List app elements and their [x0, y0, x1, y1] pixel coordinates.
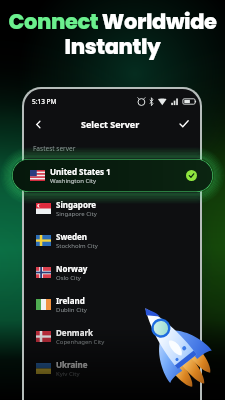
- staticText: Kyiv City: [56, 370, 80, 378]
- button[interactable]: United States 1: [12, 159, 213, 192]
- staticText: United States 1: [50, 166, 111, 177]
- staticText: Oslo City: [56, 274, 81, 282]
- button[interactable]: Confirm selection: [175, 115, 193, 133]
- button[interactable]: Back: [29, 115, 47, 133]
- staticText: Denmark: [56, 327, 93, 338]
- button[interactable]: Denmark: [24, 320, 200, 352]
- staticText: Singapore City: [56, 210, 97, 218]
- staticText: Dublin City: [56, 306, 87, 314]
- staticText: 5:13 PM: [32, 97, 57, 106]
- button[interactable]: Sweden: [24, 224, 200, 256]
- staticText: Copenhagen City: [56, 338, 105, 346]
- staticText: Norway: [56, 263, 88, 274]
- staticText: Sweden: [56, 231, 88, 242]
- button[interactable]: Norway: [24, 256, 200, 288]
- staticText: Ukraine: [56, 359, 88, 370]
- staticText: Fastest server: [33, 144, 76, 153]
- staticText: Select Server: [81, 118, 140, 130]
- button[interactable]: Ukraine: [24, 352, 200, 384]
- staticText: Ireland: [56, 295, 85, 306]
- staticText: Washington City: [50, 177, 96, 185]
- button[interactable]: Ireland: [24, 288, 200, 320]
- staticText: Singapore: [56, 199, 97, 210]
- other: Rocket: [128, 290, 224, 400]
- button[interactable]: Singapore: [24, 192, 200, 224]
- staticText: Connect Worldwide: [0, 7, 225, 36]
- staticText: Stockholm City: [56, 242, 98, 250]
- staticText: Instantly: [0, 32, 225, 61]
